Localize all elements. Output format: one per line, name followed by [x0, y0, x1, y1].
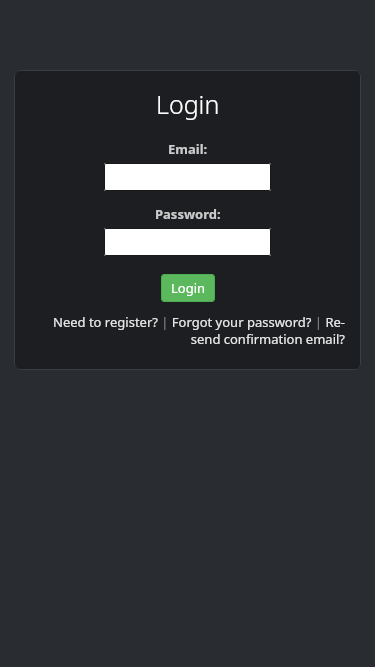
button[interactable]: Need to register? | Forgot your password… [30, 313, 345, 348]
staticText: Email: [168, 140, 208, 158]
button[interactable]: Password: [104, 228, 271, 256]
staticText: Password: [155, 205, 221, 223]
staticText: Login [156, 87, 220, 121]
button[interactable]: Login [161, 274, 215, 302]
staticText: Login [171, 279, 206, 297]
button[interactable]: Email: [104, 163, 271, 191]
